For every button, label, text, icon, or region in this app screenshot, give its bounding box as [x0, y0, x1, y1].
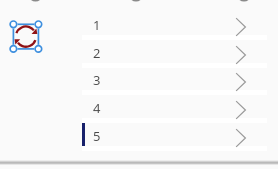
- staticText: 1: [93, 16, 101, 34]
- button[interactable]: 1: [82, 12, 267, 35]
- staticText: 3: [93, 71, 101, 89]
- staticText: 4: [93, 99, 101, 117]
- button[interactable]: Refresh: [6, 17, 46, 57]
- staticText: 2: [93, 44, 101, 62]
- button[interactable]: 5: [82, 123, 267, 146]
- staticText: 5: [93, 127, 101, 145]
- button[interactable]: 3: [82, 67, 267, 90]
- button[interactable]: 2: [82, 40, 267, 63]
- button[interactable]: 4: [82, 95, 267, 118]
